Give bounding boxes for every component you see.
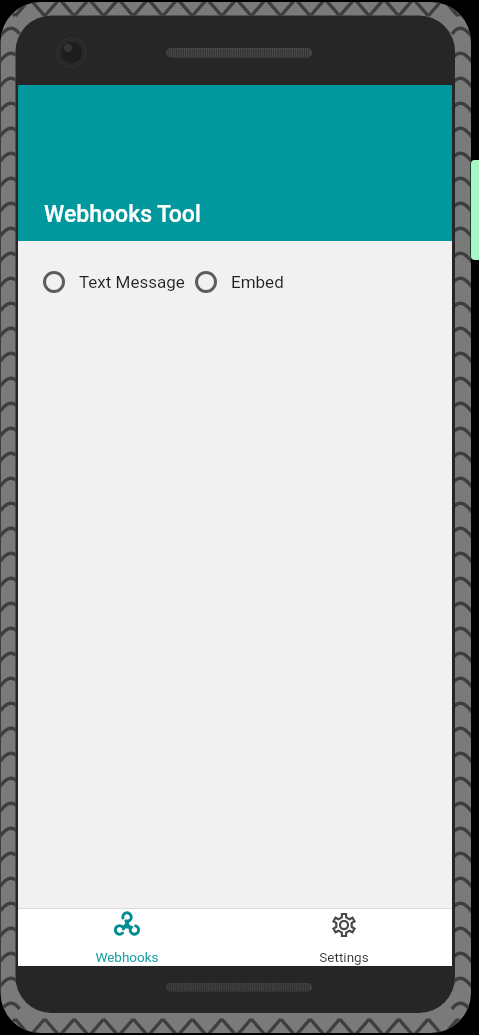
staticText: Webhooks Tool	[44, 201, 201, 228]
staticText: Settings	[319, 949, 369, 965]
staticText: Embed	[231, 272, 284, 292]
staticText: Text Message	[79, 272, 185, 292]
button[interactable]: Settings	[235, 909, 452, 965]
staticText: Webhooks	[95, 949, 159, 965]
other: Settings	[331, 912, 357, 938]
button[interactable]: Text Message	[34, 263, 186, 301]
button[interactable]: Webhooks	[18, 909, 235, 965]
button[interactable]: Embed	[186, 263, 285, 301]
other: Webhooks	[114, 912, 140, 938]
